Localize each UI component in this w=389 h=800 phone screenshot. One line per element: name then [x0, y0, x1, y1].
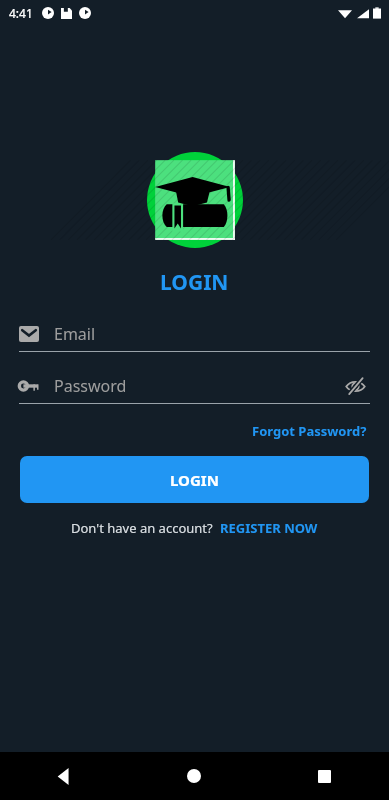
staticText: Email [54, 323, 370, 345]
button[interactable]: Back [0, 752, 129, 800]
staticText: 4:41 [9, 5, 33, 21]
button[interactable]: Toggle password visibility [340, 371, 370, 401]
staticText: Forgot Password? [252, 422, 367, 440]
button[interactable]: Home [129, 752, 259, 800]
button[interactable]: Password [19, 371, 370, 404]
button[interactable]: Recent apps [259, 752, 389, 800]
button[interactable]: REGISTER NOW [220, 516, 318, 540]
button[interactable]: Email [19, 319, 370, 352]
button[interactable]: LOGIN [20, 456, 369, 503]
staticText: REGISTER NOW [220, 519, 318, 537]
staticText: LOGIN [170, 470, 219, 490]
staticText: Don't have an account? [71, 519, 213, 537]
staticText: LOGIN [160, 268, 229, 297]
staticText: Password [54, 375, 340, 397]
button[interactable]: Forgot Password? [250, 418, 369, 444]
